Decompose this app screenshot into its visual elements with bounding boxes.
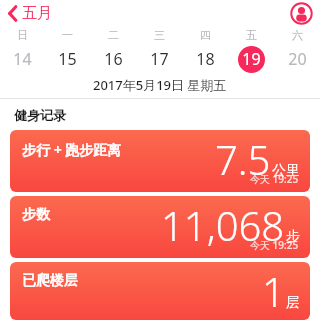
staticText: 公里: [272, 162, 300, 180]
button[interactable]: 已爬楼层: [10, 262, 310, 320]
button[interactable]: 18: [182, 44, 228, 74]
staticText: 日: [17, 28, 28, 42]
staticText: 7.5: [215, 132, 271, 186]
staticText: 五: [246, 28, 257, 42]
button[interactable]: 16: [90, 44, 136, 74]
staticText: 四: [200, 28, 211, 42]
staticText: 今天 19:25: [250, 238, 299, 252]
button[interactable]: 20: [274, 44, 320, 74]
staticText: 2017年5月19日 星期五: [93, 76, 227, 94]
staticText: 1: [262, 264, 285, 318]
button[interactable]: 步数: [10, 196, 310, 258]
staticText: 14: [13, 48, 32, 70]
button[interactable]: 步行 + 跑步距离: [10, 130, 310, 192]
staticText: 19: [242, 48, 261, 70]
staticText: 六: [292, 28, 303, 42]
button[interactable]: 15: [45, 44, 90, 74]
staticText: 层: [286, 294, 300, 312]
staticText: 16: [104, 48, 123, 70]
staticText: 已爬楼层: [22, 272, 78, 290]
staticText: 20: [288, 48, 307, 70]
staticText: 18: [196, 48, 215, 70]
staticText: 一: [62, 28, 73, 42]
staticText: 步数: [22, 206, 50, 224]
staticText: 健身记录: [14, 107, 66, 123]
staticText: 11,068: [161, 198, 285, 252]
staticText: 步行 + 跑步距离: [22, 140, 122, 159]
button[interactable]: 五月: [0, 2, 58, 25]
staticText: 步: [286, 228, 300, 246]
staticText: 17: [150, 48, 169, 70]
button[interactable]: 19: [228, 44, 274, 74]
staticText: 二: [108, 28, 119, 42]
staticText: 五月: [22, 4, 52, 23]
staticText: 三: [154, 28, 165, 42]
button[interactable]: 17: [136, 44, 182, 74]
staticText: 15: [58, 48, 77, 70]
button[interactable]: 14: [0, 44, 45, 74]
staticText: 今天 19:25: [250, 172, 299, 186]
button[interactable]: Profile: [288, 0, 314, 26]
